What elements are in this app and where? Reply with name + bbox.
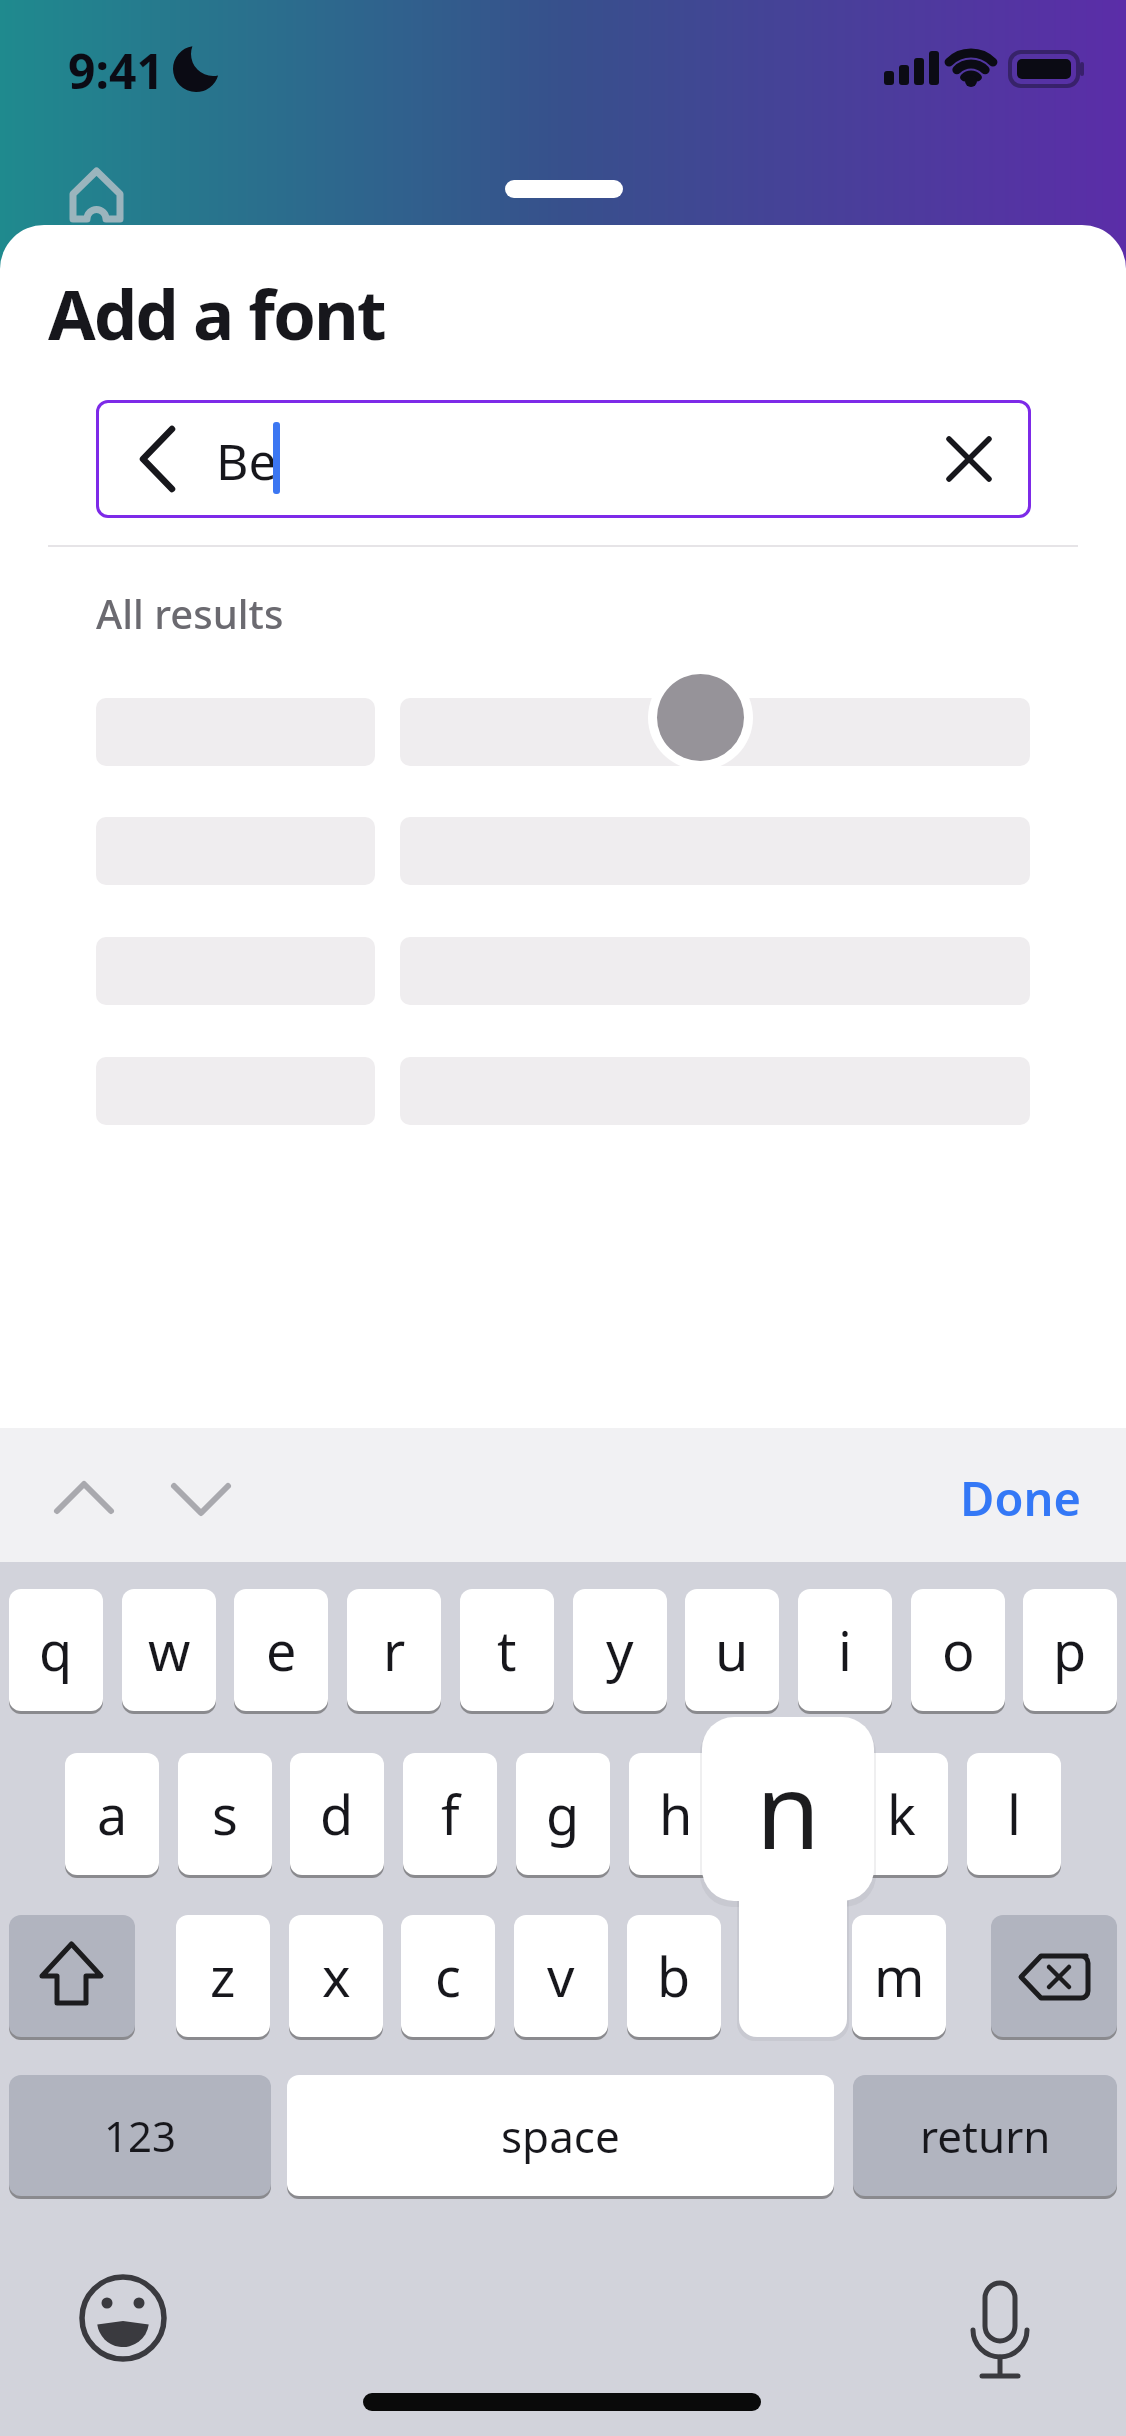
staticText: n [756,1738,821,1880]
staticText: p [1053,1613,1087,1687]
staticText: f [441,1777,460,1851]
button[interactable]: p [1023,1589,1117,1711]
button[interactable]: w [122,1589,216,1711]
button[interactable]: d [290,1753,384,1875]
button[interactable]: space [287,2075,834,2196]
button[interactable] [9,1915,135,2037]
staticText: Add a font [48,266,385,360]
button[interactable]: h [629,1753,723,1875]
staticText: r [383,1613,406,1687]
staticText: space [501,2106,620,2166]
staticText: h [659,1777,693,1851]
button[interactable]: r [347,1589,441,1711]
staticText: q [39,1613,73,1687]
button[interactable]: Done [940,1460,1100,1536]
button[interactable]: f [403,1753,497,1875]
button[interactable]: y [573,1589,667,1711]
staticText: l [1007,1777,1021,1851]
staticText: s [212,1777,238,1851]
button[interactable]: a [65,1753,159,1875]
staticText: k [887,1777,916,1851]
button[interactable]: c [401,1915,495,2037]
staticText: 123 [104,2107,177,2164]
button[interactable]: z [176,1915,270,2037]
button[interactable]: l [967,1753,1061,1875]
staticText: v [547,1939,575,2013]
button[interactable] [991,1915,1117,2037]
button[interactable]: v [514,1915,608,2037]
staticText: z [210,1939,236,2013]
button[interactable]: 123 [9,2075,271,2196]
staticText: b [657,1939,691,2013]
staticText: All results [96,586,284,640]
staticText: u [715,1613,749,1687]
staticText: Be [216,427,277,495]
staticText: y [606,1613,634,1687]
staticText: 9:41 [68,38,164,103]
staticText: m [874,1939,925,2013]
staticText: i [838,1613,852,1687]
button[interactable]: return [853,2075,1117,2196]
button[interactable]: k [854,1753,948,1875]
staticText: Done [960,1466,1081,1530]
button[interactable] [96,400,1031,518]
button[interactable]: e [234,1589,328,1711]
button[interactable]: t [460,1589,554,1711]
staticText: w [148,1613,191,1687]
staticText: c [435,1939,461,2013]
staticText: e [266,1613,297,1687]
staticText: return [920,2106,1051,2166]
staticText: d [320,1777,354,1851]
button[interactable]: x [289,1915,383,2037]
button[interactable]: g [516,1753,610,1875]
button[interactable]: i [798,1589,892,1711]
button[interactable]: s [178,1753,272,1875]
staticText: a [97,1777,128,1851]
button[interactable]: u [685,1589,779,1711]
button[interactable]: m [852,1915,946,2037]
staticText: t [497,1613,517,1687]
button[interactable]: b [627,1915,721,2037]
button[interactable]: o [911,1589,1005,1711]
staticText: g [546,1777,580,1851]
staticText: o [942,1613,975,1687]
staticText: x [322,1939,351,2013]
button[interactable]: q [9,1589,103,1711]
